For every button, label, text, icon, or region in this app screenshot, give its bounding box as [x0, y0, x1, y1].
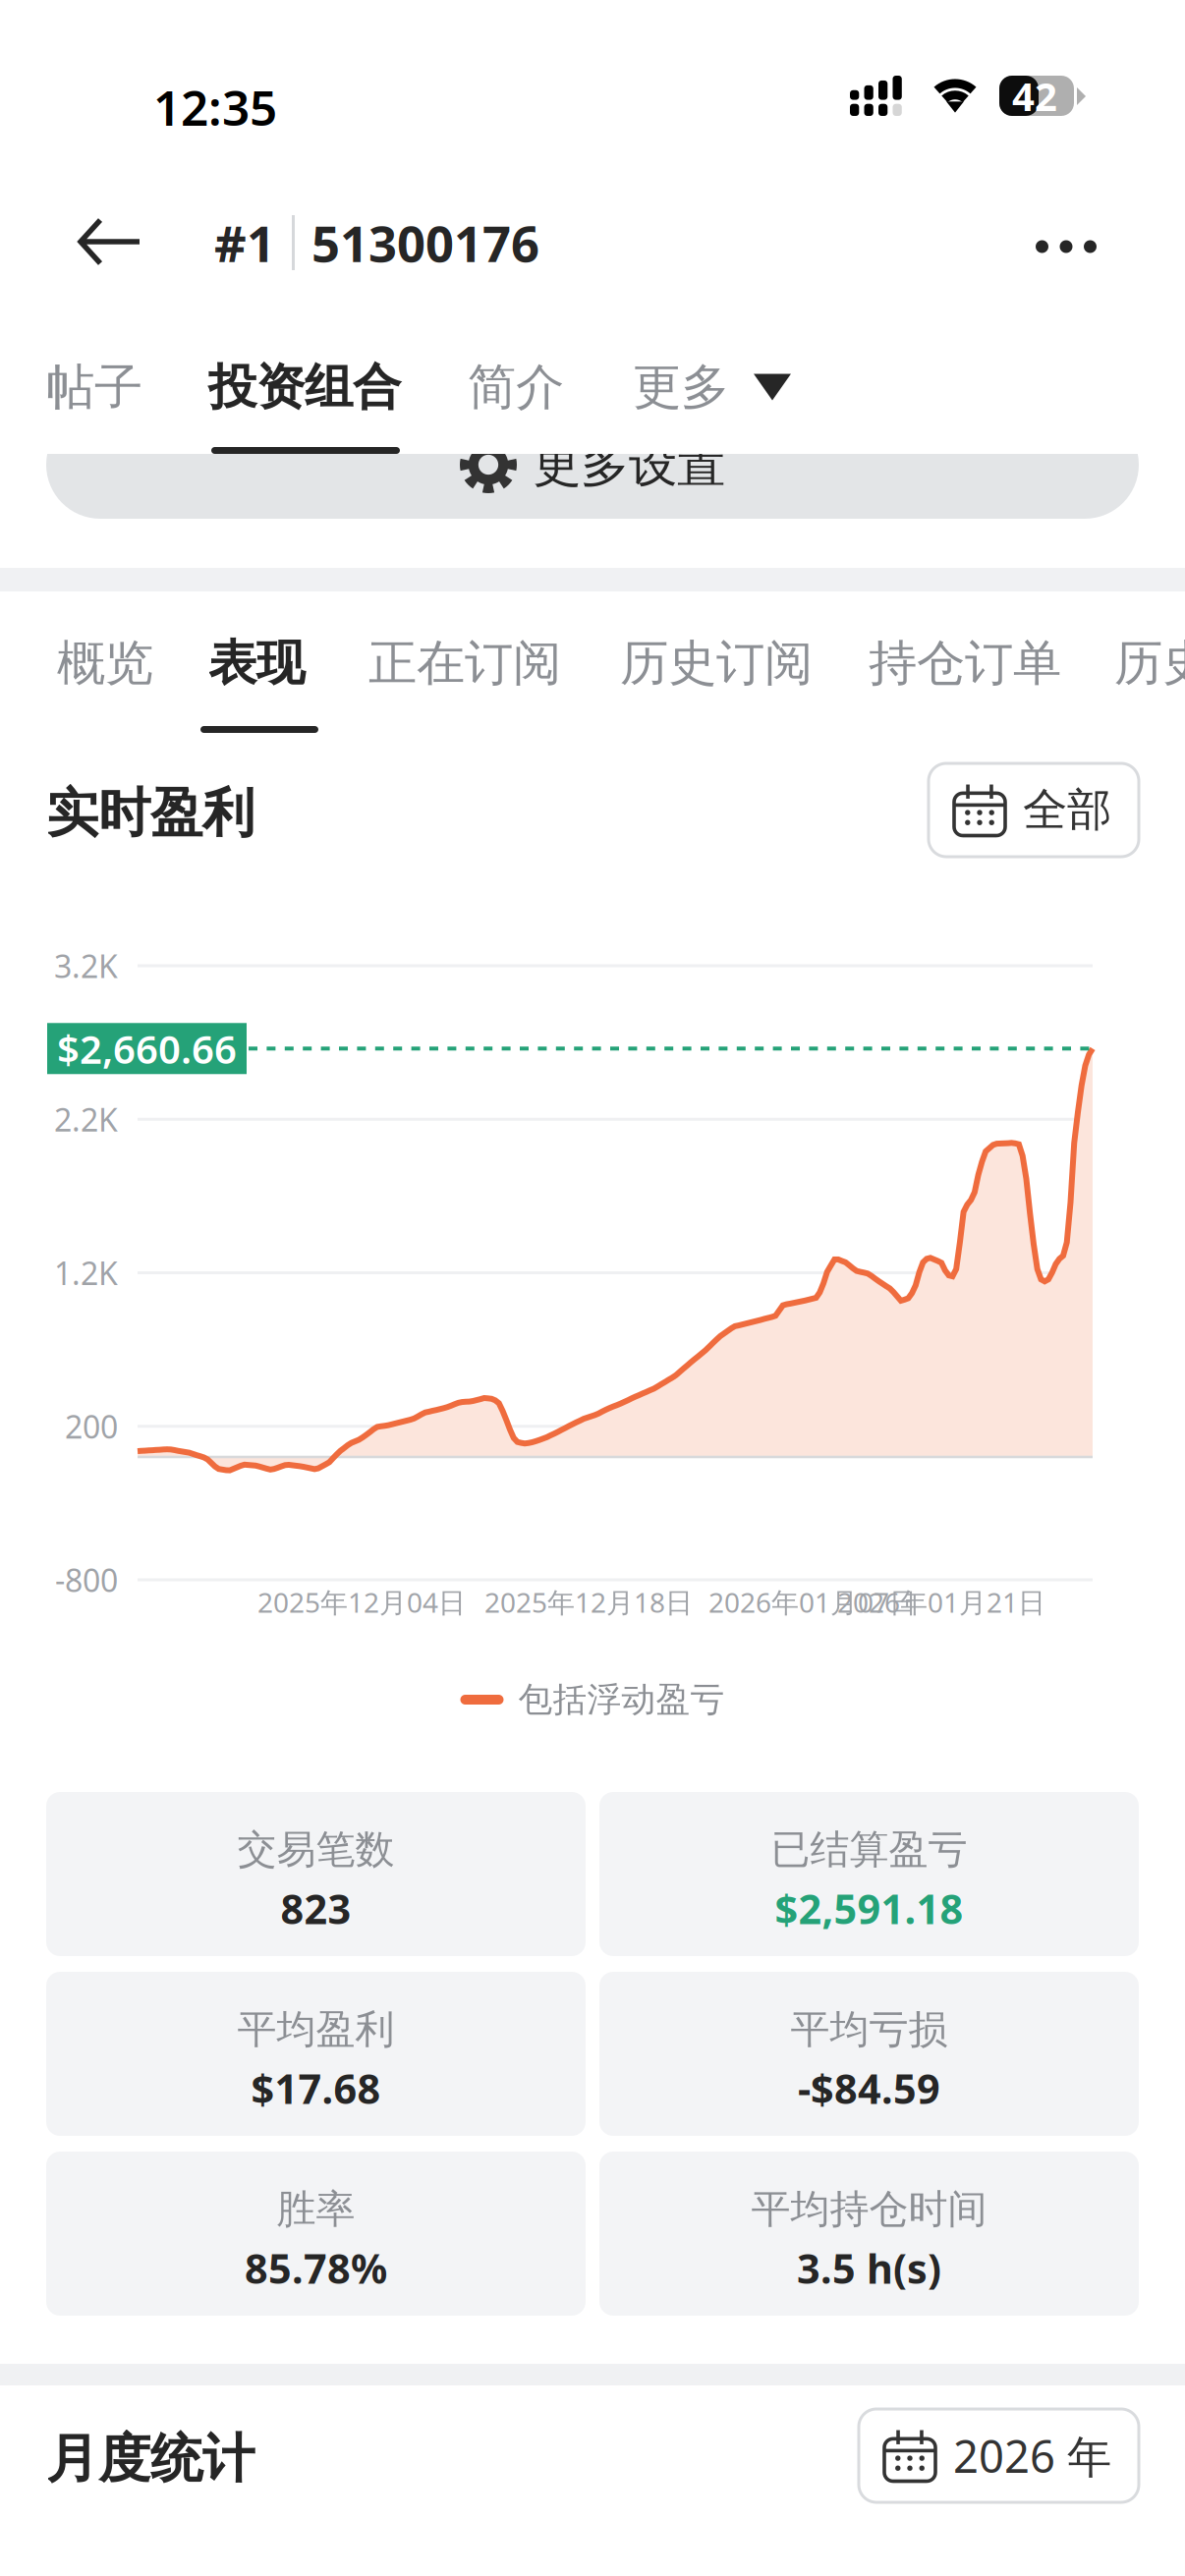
staticText: 全部 [1023, 783, 1111, 837]
staticText: $2,660.66 [57, 1022, 237, 1075]
staticText: 平均持仓时间 [751, 2185, 987, 2233]
staticText: 已结算盈亏 [771, 1825, 967, 1874]
staticText: 月度统计 [46, 2427, 254, 2491]
button[interactable]: 全部 [929, 763, 1139, 857]
staticText: 表现 [208, 633, 305, 693]
staticText: 持仓订单 [869, 633, 1061, 693]
staticText: $2,591.18 [775, 1882, 963, 1935]
staticText: 2026年01月07日 [708, 1584, 917, 1620]
staticText: 2025年12月18日 [484, 1584, 693, 1620]
staticText: 平均亏损 [790, 2005, 948, 2053]
button[interactable]: 胜率 [46, 2152, 586, 2316]
staticText: 历史 [1114, 633, 1185, 693]
staticText: $17.68 [251, 2061, 381, 2115]
staticText: 2026年01月21日 [837, 1584, 1045, 1620]
staticText: 实时盈利 [46, 781, 254, 845]
button[interactable]: 更多 [633, 357, 791, 417]
staticText: 51300176 [311, 210, 539, 276]
button[interactable]: 交易笔数 [46, 1792, 586, 1956]
button[interactable]: 历史 [1114, 633, 1185, 693]
button[interactable]: Back [55, 195, 163, 289]
staticText: 胜率 [277, 2185, 355, 2233]
button[interactable]: 正在订阅 [368, 633, 561, 693]
button[interactable]: 持仓订单 [869, 633, 1061, 693]
button[interactable]: 历史订阅 [620, 633, 813, 693]
staticText: 3.5 h(s) [797, 2241, 941, 2295]
staticText: 正在订阅 [368, 633, 561, 693]
staticText: 概览 [57, 633, 153, 693]
button[interactable]: 更多设置 [46, 454, 1139, 519]
staticText: 包括浮动盈亏 [518, 1679, 725, 1721]
staticText: 投资组合 [208, 357, 401, 417]
staticText: 历史订阅 [620, 633, 813, 693]
button[interactable]: 投资组合 [208, 357, 401, 417]
button[interactable]: 平均亏损 [599, 1972, 1139, 2136]
button[interactable]: 帖子 [46, 357, 142, 417]
staticText: -$84.59 [798, 2061, 940, 2115]
staticText: 2.2K [54, 1098, 118, 1140]
staticText: 更多 [633, 357, 729, 417]
staticText: #1 [214, 210, 275, 276]
staticText: 2025年12月04日 [257, 1584, 466, 1620]
button[interactable]: 已结算盈亏 [599, 1792, 1139, 1956]
staticText: 3.2K [54, 945, 118, 987]
staticText: 42 [1012, 70, 1057, 122]
staticText: 12:35 [153, 75, 277, 139]
button[interactable]: More options [1012, 215, 1120, 279]
button[interactable]: 平均盈利 [46, 1972, 586, 2136]
staticText: -800 [55, 1559, 118, 1601]
staticText: 85.78% [245, 2241, 387, 2295]
staticText: 更多设置 [533, 435, 725, 494]
staticText: 简介 [468, 357, 564, 417]
staticText: 823 [281, 1882, 351, 1935]
button[interactable]: 2026 年 [859, 2409, 1139, 2502]
staticText: 平均盈利 [237, 2005, 395, 2053]
button[interactable]: 简介 [468, 357, 564, 417]
staticText: 200 [65, 1405, 118, 1447]
staticText: 1.2K [54, 1252, 118, 1294]
staticText: 帖子 [46, 357, 142, 417]
staticText: 交易笔数 [237, 1825, 395, 1874]
button[interactable]: 概览 [57, 633, 153, 693]
button[interactable]: 表现 [208, 633, 305, 693]
staticText: 2026 年 [953, 2426, 1111, 2485]
button[interactable]: 平均持仓时间 [599, 2152, 1139, 2316]
